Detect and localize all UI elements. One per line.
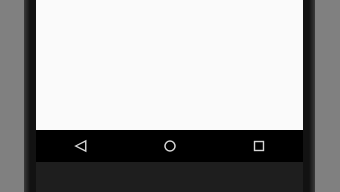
button[interactable]: Home: [125, 130, 214, 162]
button[interactable]: Back: [36, 130, 125, 162]
button[interactable]: Recent apps: [214, 130, 303, 162]
